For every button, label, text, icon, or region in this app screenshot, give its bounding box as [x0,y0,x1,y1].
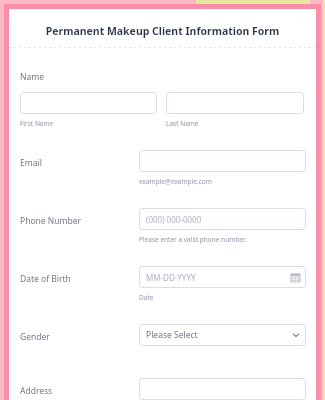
button[interactable] [20,92,157,114]
button[interactable]: Please Select [139,324,306,346]
other: Expand gender options [292,331,300,339]
staticText: Permanent Makeup Client Information Form [15,24,310,38]
button[interactable] [139,150,306,172]
staticText: MM-DD-YYYY [146,272,196,283]
staticText: Please Select [146,329,198,341]
button[interactable]: MM-DD-YYYY [139,266,306,288]
staticText: Date [139,293,154,302]
staticText: example@example.com [139,177,212,186]
staticText: First Name [20,119,54,128]
staticText: Phone Number [20,215,81,227]
other: Open calendar picker [291,273,300,282]
staticText: Name [20,71,44,83]
button[interactable] [166,92,304,114]
staticText: Email [20,157,42,169]
button[interactable] [139,378,306,400]
staticText: Last Name [166,119,199,128]
staticText: Address [20,385,53,397]
button[interactable]: (000) 000-0000 [139,208,306,230]
staticText: Date of Birth [20,273,71,285]
staticText: Gender [20,331,50,343]
staticText: (000) 000-0000 [146,214,202,225]
staticText: Please enter a valid phone number. [139,235,247,244]
